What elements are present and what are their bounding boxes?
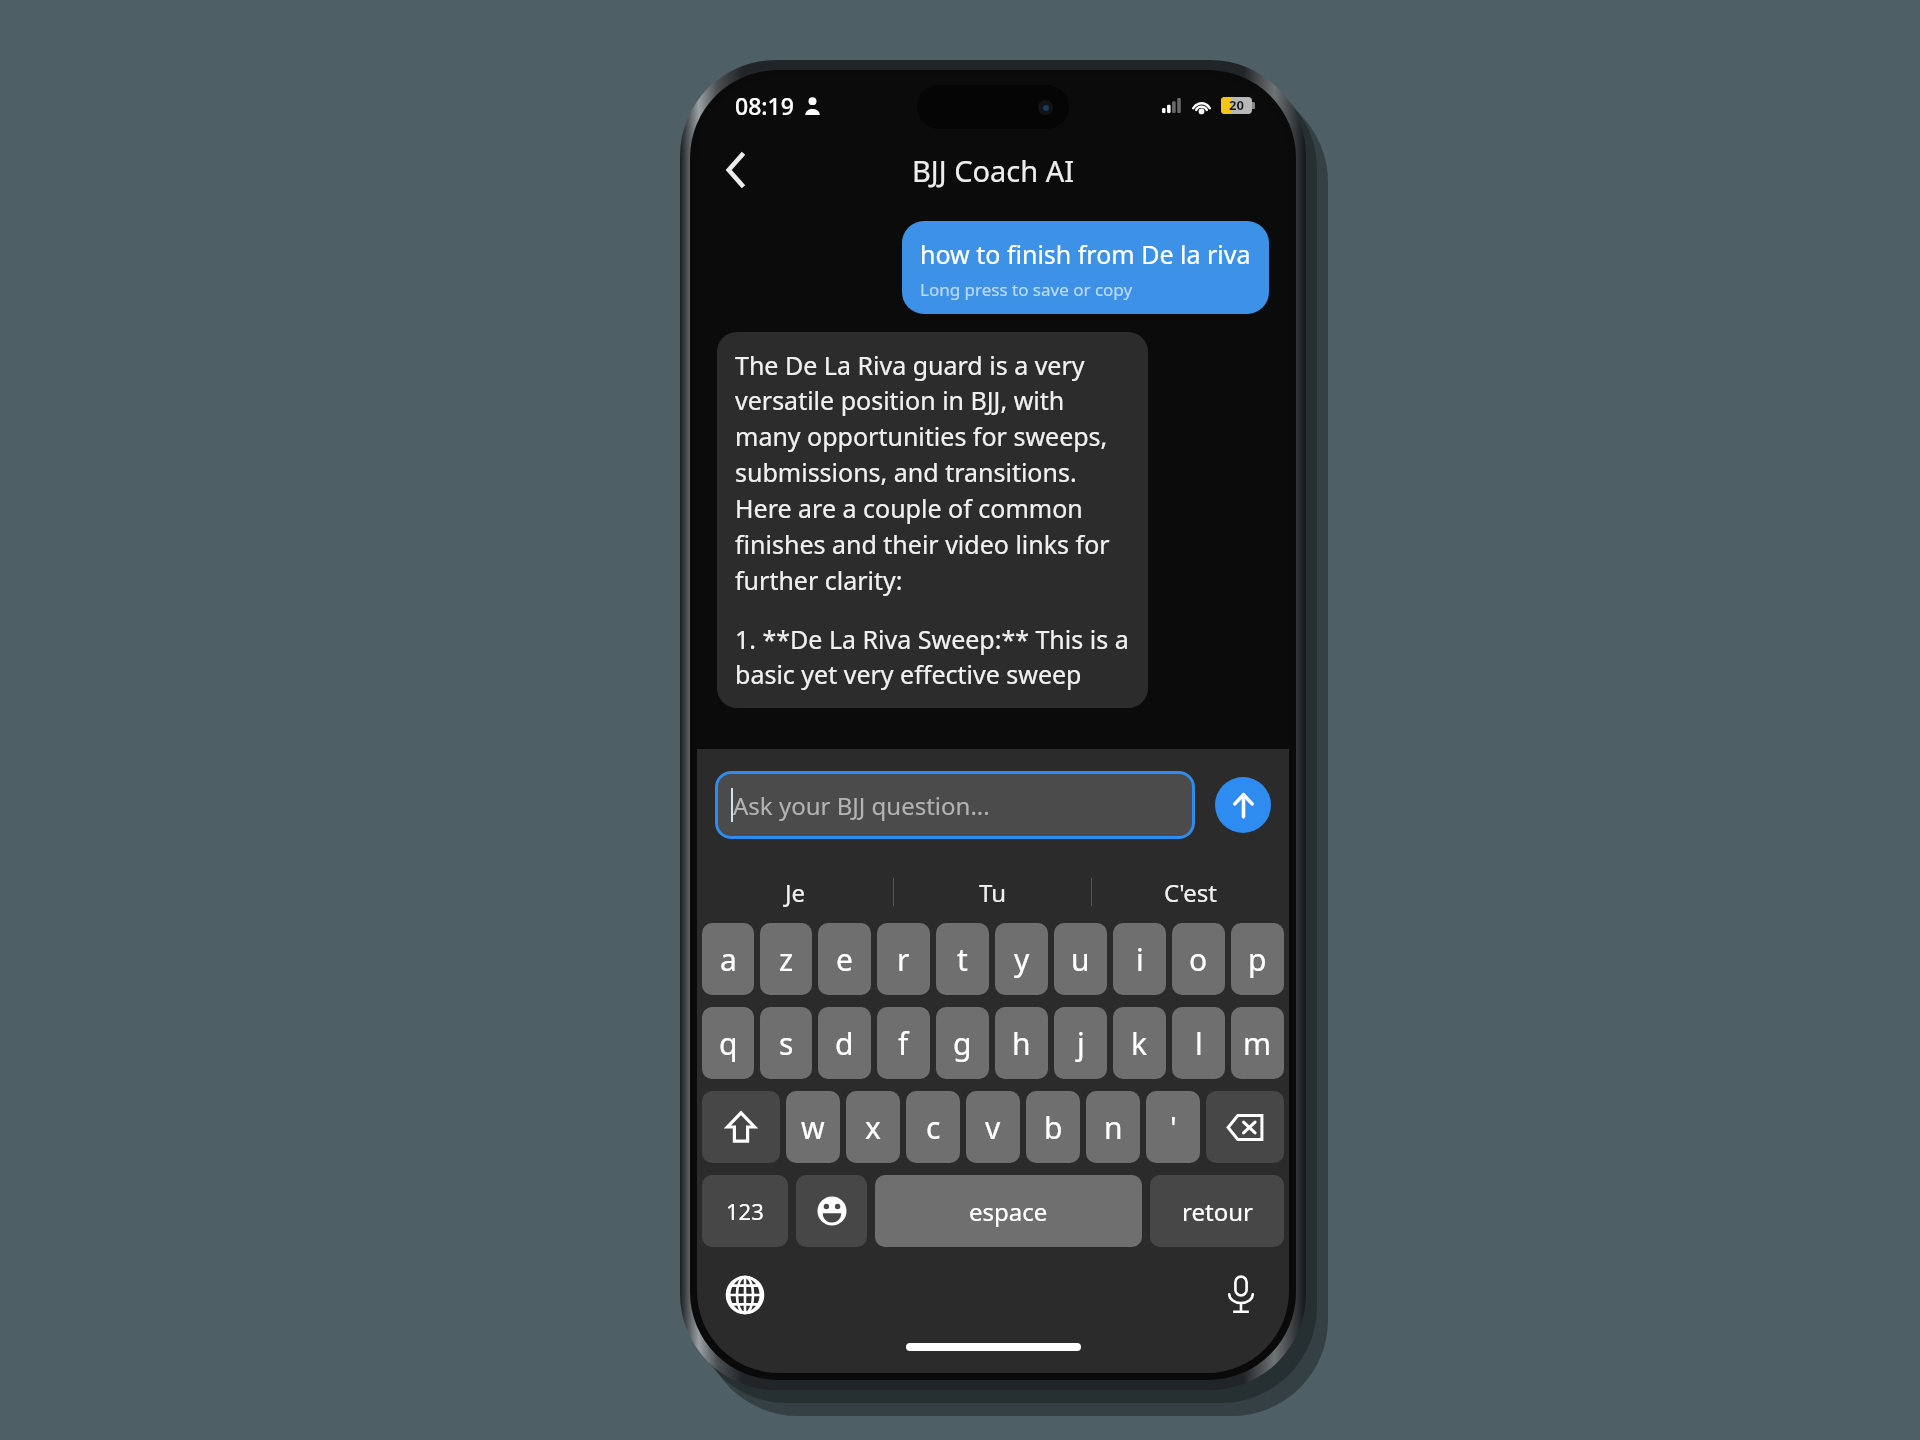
button[interactable]: v: [966, 1091, 1020, 1163]
button[interactable]: n: [1086, 1091, 1140, 1163]
button[interactable]: j: [1054, 1007, 1107, 1079]
staticText: u: [1071, 939, 1090, 980]
staticText: j: [1077, 1023, 1085, 1064]
button[interactable]: k: [1113, 1007, 1166, 1079]
button[interactable]: Tu: [894, 861, 1091, 923]
button[interactable]: ': [1146, 1091, 1200, 1163]
staticText: g: [953, 1023, 972, 1064]
staticText: Tu: [979, 876, 1006, 909]
staticText: c: [926, 1107, 941, 1148]
button[interactable]: Backspace: [1206, 1091, 1284, 1163]
button[interactable]: espace: [875, 1175, 1142, 1247]
staticText: Long press to save or copy: [920, 278, 1133, 301]
button[interactable]: p: [1231, 923, 1284, 995]
button[interactable]: i: [1113, 923, 1166, 995]
button[interactable]: The De La Riva guard is a very versatile…: [717, 332, 1148, 708]
staticText: 1. **De La Riva Sweep:** This is a basic…: [735, 622, 1130, 692]
staticText: z: [779, 939, 794, 980]
button[interactable]: how to finish from De la riva: [902, 221, 1269, 314]
button[interactable]: q: [702, 1007, 754, 1079]
staticText: a: [720, 939, 737, 980]
button[interactable]: m: [1231, 1007, 1284, 1079]
button[interactable]: h: [995, 1007, 1048, 1079]
staticText: x: [865, 1107, 881, 1148]
button[interactable]: d: [818, 1007, 871, 1079]
button[interactable]: x: [846, 1091, 900, 1163]
staticText: t: [957, 939, 968, 980]
staticText: p: [1248, 939, 1267, 980]
button[interactable]: Change keyboard language: [719, 1269, 771, 1321]
staticText: BJJ Coach AI: [912, 151, 1075, 190]
staticText: 08:19: [735, 90, 794, 121]
staticText: 123: [726, 1196, 764, 1226]
button[interactable]: l: [1172, 1007, 1225, 1079]
button[interactable]: r: [877, 923, 930, 995]
button[interactable]: z: [760, 923, 812, 995]
staticText: k: [1131, 1023, 1148, 1064]
button[interactable]: Shift: [702, 1091, 780, 1163]
staticText: The De La Riva guard is a very versatile…: [735, 348, 1130, 598]
staticText: s: [779, 1023, 794, 1064]
staticText: q: [719, 1023, 738, 1064]
staticText: Je: [785, 876, 806, 909]
staticText: n: [1104, 1107, 1123, 1148]
staticText: b: [1044, 1107, 1063, 1148]
button[interactable]: Send: [1215, 777, 1271, 833]
staticText: d: [835, 1023, 854, 1064]
staticText: ': [1170, 1107, 1177, 1148]
button[interactable]: g: [936, 1007, 989, 1079]
staticText: r: [897, 939, 910, 980]
button[interactable]: Back: [711, 146, 759, 194]
staticText: e: [836, 939, 853, 980]
staticText: 20: [1229, 96, 1244, 114]
button[interactable]: e: [818, 923, 871, 995]
button[interactable]: f: [877, 1007, 930, 1079]
staticText: Ask your BJJ question...: [733, 789, 990, 822]
button[interactable]: retour: [1150, 1175, 1284, 1247]
button[interactable]: a: [702, 923, 754, 995]
button[interactable]: Dictate: [1215, 1269, 1267, 1321]
staticText: f: [898, 1023, 909, 1064]
button[interactable]: b: [1026, 1091, 1080, 1163]
staticText: l: [1195, 1023, 1203, 1064]
staticText: y: [1014, 939, 1030, 980]
button[interactable]: c: [906, 1091, 960, 1163]
button[interactable]: 123: [702, 1175, 788, 1247]
staticText: v: [985, 1107, 1001, 1148]
staticText: h: [1012, 1023, 1031, 1064]
staticText: o: [1189, 939, 1208, 980]
staticText: m: [1243, 1023, 1272, 1064]
button[interactable]: C'est: [1092, 861, 1289, 923]
button[interactable]: s: [760, 1007, 812, 1079]
staticText: retour: [1182, 1195, 1253, 1228]
button[interactable]: o: [1172, 923, 1225, 995]
button[interactable]: w: [786, 1091, 840, 1163]
button[interactable]: Je: [697, 861, 893, 923]
staticText: C'est: [1164, 876, 1217, 909]
button[interactable]: u: [1054, 923, 1107, 995]
staticText: i: [1136, 939, 1144, 980]
staticText: how to finish from De la riva: [920, 237, 1251, 271]
button[interactable]: Ask your BJJ question...: [715, 771, 1195, 839]
staticText: espace: [969, 1195, 1048, 1228]
button[interactable]: y: [995, 923, 1048, 995]
button[interactable]: Emoji: [796, 1175, 867, 1247]
staticText: w: [801, 1107, 825, 1148]
button[interactable]: t: [936, 923, 989, 995]
